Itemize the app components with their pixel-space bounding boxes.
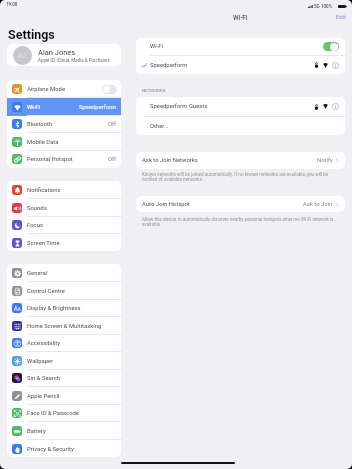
staticText: Apple ID, iCloud, Media & Purchases	[38, 58, 110, 63]
staticText: Ask to Join Networks	[142, 157, 198, 164]
staticText: Other...	[150, 123, 169, 130]
staticText: Battery	[27, 428, 46, 435]
button[interactable]: Mobile Data	[7, 133, 121, 151]
staticText: 19:00	[6, 2, 18, 7]
other: Signal strength	[323, 63, 328, 68]
button[interactable]: Airplane Mode	[7, 80, 121, 98]
staticText: Allow this device to automatically disco…	[142, 217, 335, 227]
button[interactable]: Other...	[136, 117, 345, 135]
button[interactable]: Focus	[7, 216, 121, 234]
button[interactable]: Apple Pencil	[7, 387, 121, 405]
other: Secured	[315, 62, 318, 68]
staticText: Off	[108, 121, 117, 128]
staticText: Wi-Fi	[233, 14, 248, 21]
staticText: Alan Jones	[38, 48, 76, 57]
staticText: Known networks will be joined automatica…	[142, 172, 335, 182]
button[interactable]: Speedperform	[136, 56, 345, 74]
staticText: Focus	[27, 222, 43, 229]
button[interactable]: Notifications	[7, 181, 121, 199]
staticText: Wallpaper	[27, 358, 54, 365]
button[interactable]: Screen Time	[7, 234, 121, 251]
button[interactable]: Control Centre	[7, 282, 121, 300]
button[interactable]: General	[7, 264, 121, 282]
staticText: Speedperform Guests	[150, 103, 208, 110]
staticText: Home Screen & Multitasking	[27, 323, 102, 330]
staticText: Display & Brightness	[27, 305, 81, 312]
staticText: 100%	[321, 4, 332, 9]
other: More info	[332, 103, 339, 110]
staticText: 5G	[314, 4, 320, 9]
button[interactable]: Display & Brightness	[7, 299, 121, 317]
staticText: Wi-Fi	[150, 43, 163, 50]
staticText: Wi-Fi	[27, 104, 40, 111]
staticText: Edit	[336, 14, 346, 21]
staticText: NETWORKS	[142, 88, 166, 93]
button[interactable]: Speedperform Guests	[136, 97, 345, 116]
button[interactable]: Home Screen & Multitasking	[7, 317, 121, 335]
button[interactable]: AJ	[7, 44, 121, 66]
button[interactable]: Privacy & Security	[7, 440, 121, 457]
button[interactable]: Wi-Fi	[7, 98, 121, 116]
staticText: Mobile Data	[27, 139, 59, 146]
button[interactable]: Airplane Mode toggle	[102, 85, 117, 94]
other: Secured	[315, 104, 318, 110]
staticText: Ask to Join	[303, 201, 333, 208]
button[interactable]: Bluetooth	[7, 115, 121, 133]
button[interactable]: Auto-Join Hotspot	[136, 196, 345, 212]
button[interactable]: Sounds	[7, 199, 121, 217]
staticText: Speedperform	[79, 104, 117, 111]
other: Signal strength	[323, 104, 328, 109]
staticText: Notify	[317, 157, 333, 164]
staticText: Screen Time	[27, 240, 60, 247]
staticText: Speedperform	[150, 62, 188, 69]
staticText: Settings	[8, 27, 55, 42]
staticText: General	[27, 270, 48, 277]
staticText: Bluetooth	[27, 121, 53, 128]
button[interactable]: Accessibility	[7, 334, 121, 352]
staticText: Apple Pencil	[27, 393, 60, 400]
staticText: Siri & Search	[27, 375, 61, 382]
button[interactable]: Wi-Fi toggle	[323, 42, 339, 51]
staticText: Auto-Join Hotspot	[142, 201, 190, 208]
button[interactable]: Battery	[7, 422, 121, 440]
button[interactable]: Siri & Search	[7, 369, 121, 387]
other: More info	[332, 62, 339, 69]
staticText: Control Centre	[27, 288, 65, 295]
button[interactable]: Edit	[336, 14, 346, 21]
staticText: Personal Hotspot	[27, 156, 73, 163]
staticText: Airplane Mode	[27, 86, 66, 93]
staticText: Sounds	[27, 205, 47, 212]
button[interactable]: Wallpaper	[7, 352, 121, 370]
button[interactable]: Personal Hotspot	[7, 150, 121, 168]
button[interactable]: Face ID & Passcode	[7, 404, 121, 422]
staticText: AJ	[18, 52, 27, 60]
staticText: Off	[108, 156, 117, 163]
staticText: Accessibility	[27, 340, 60, 347]
staticText: Privacy & Security	[27, 446, 74, 453]
button[interactable]: Wi-Fi	[136, 38, 345, 55]
button[interactable]: Ask to Join Networks	[136, 152, 345, 169]
staticText: Notifications	[27, 187, 61, 194]
staticText: Face ID & Passcode	[27, 410, 79, 417]
